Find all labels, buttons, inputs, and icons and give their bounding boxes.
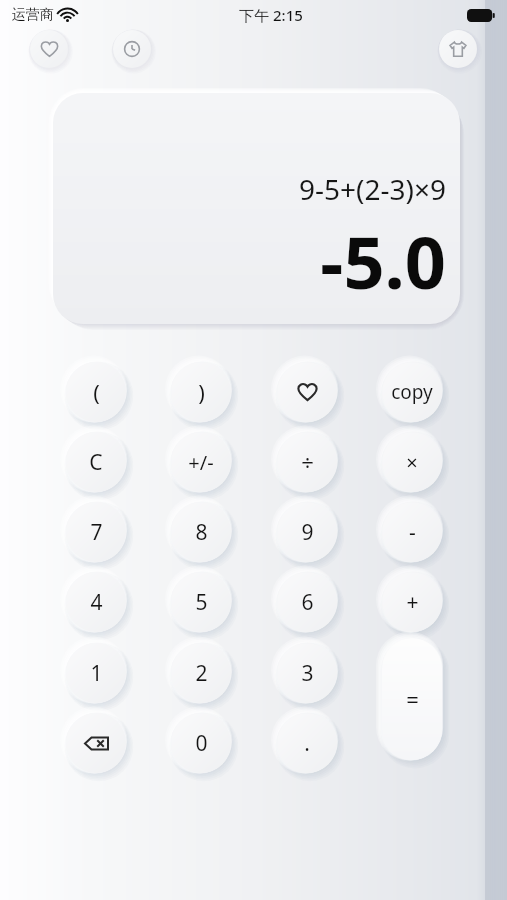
button[interactable]: ÷ [277, 432, 337, 492]
staticText: = [406, 684, 419, 714]
button[interactable]: Equals [382, 638, 442, 760]
staticText: × [406, 449, 418, 476]
button[interactable]: Backspace [66, 713, 126, 773]
button[interactable]: ) [171, 362, 231, 422]
staticText: copy [391, 379, 433, 405]
staticText: 9-5+(2-3)×9 [299, 170, 446, 208]
button[interactable]: Theme [439, 30, 477, 68]
staticText: 5 [195, 588, 208, 617]
staticText: 0 [195, 729, 208, 758]
button[interactable]: Favorites [30, 30, 68, 68]
staticText: 下午 2:15 [239, 5, 303, 25]
staticText: ( [93, 377, 100, 407]
button[interactable]: 6 [277, 572, 337, 632]
button[interactable]: 4 [66, 572, 126, 632]
staticText: 4 [90, 588, 103, 617]
staticText: 1 [90, 659, 103, 688]
staticText: 9 [301, 518, 314, 547]
staticText: -5.0 [320, 212, 446, 310]
staticText: - [409, 518, 416, 547]
button[interactable]: - [382, 502, 442, 562]
staticText: . [304, 729, 310, 758]
staticText: 6 [301, 588, 314, 617]
staticText: 8 [195, 518, 208, 547]
button[interactable]: 2 [171, 643, 231, 703]
button[interactable]: copy [382, 362, 442, 422]
button[interactable]: 7 [66, 502, 126, 562]
button[interactable]: C [66, 432, 126, 492]
button[interactable]: History [113, 30, 151, 68]
button[interactable]: 8 [171, 502, 231, 562]
button[interactable]: +/- [171, 432, 231, 492]
button[interactable]: + [382, 572, 442, 632]
staticText: 2 [195, 659, 208, 688]
staticText: 3 [301, 659, 314, 688]
button[interactable]: . [277, 713, 337, 773]
button[interactable]: 5 [171, 572, 231, 632]
staticText: +/- [188, 449, 214, 476]
staticText: C [89, 448, 103, 477]
staticText: ÷ [301, 447, 314, 477]
button[interactable]: Favorites [277, 362, 337, 422]
staticText: + [406, 588, 419, 617]
button[interactable]: 3 [277, 643, 337, 703]
staticText: ) [198, 377, 205, 407]
staticText: 运营商 [12, 6, 54, 24]
button[interactable]: 9 [277, 502, 337, 562]
staticText: 7 [90, 518, 103, 547]
button[interactable]: 0 [171, 713, 231, 773]
button[interactable]: × [382, 432, 442, 492]
button[interactable]: 1 [66, 643, 126, 703]
button[interactable]: ( [66, 362, 126, 422]
